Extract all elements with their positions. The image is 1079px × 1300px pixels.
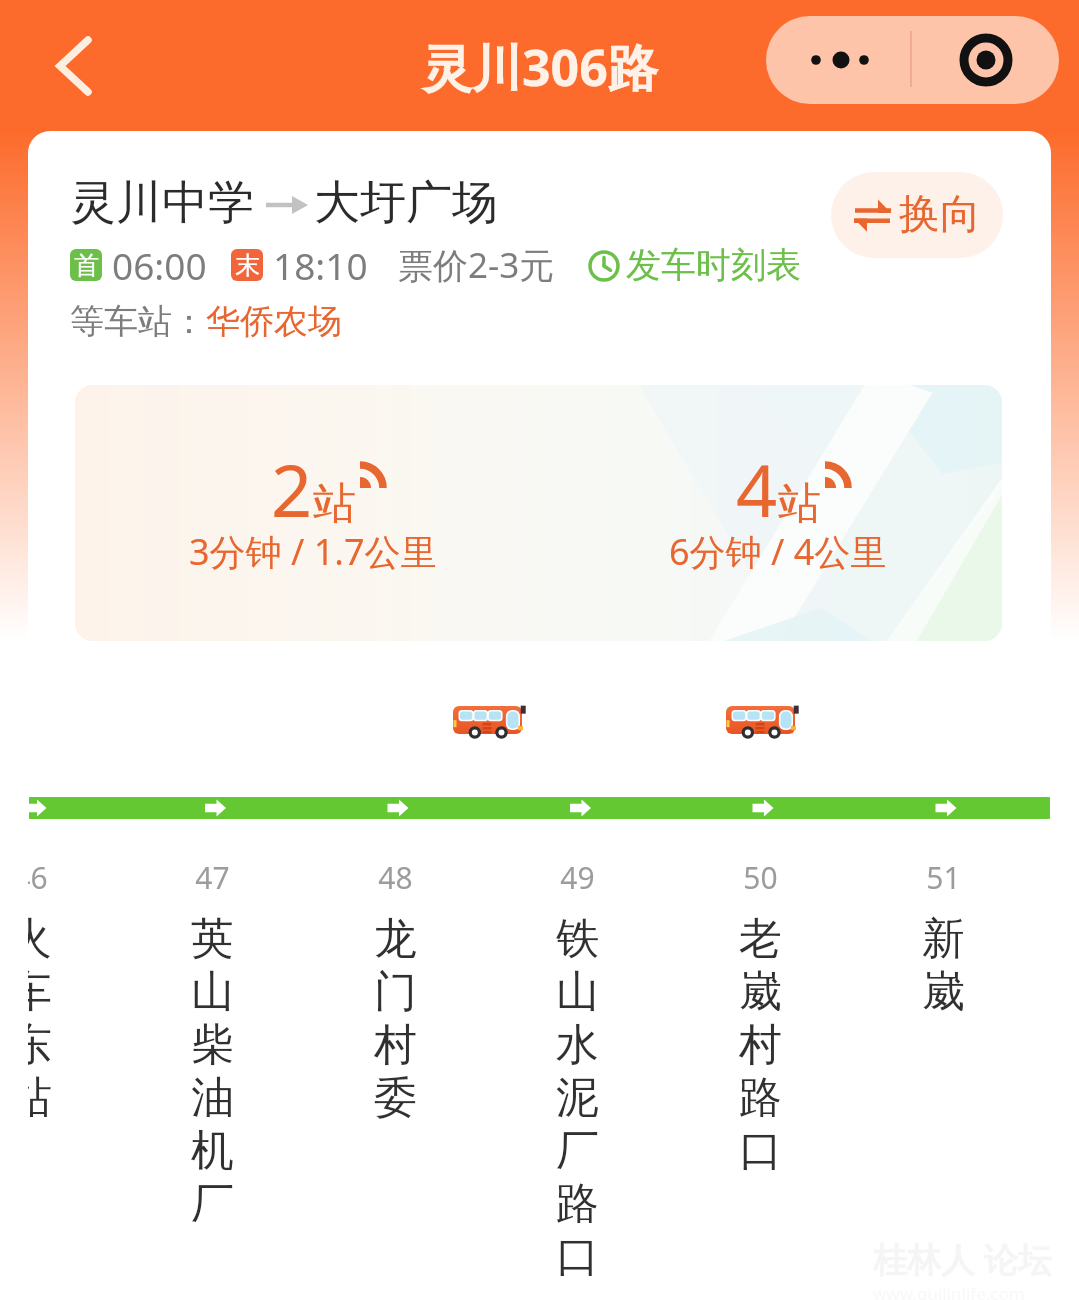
staticText: 村 [739,1018,782,1071]
staticText: 老 [739,912,782,965]
staticText: 路 [556,1177,599,1230]
staticText: 06:00 [112,240,207,290]
button[interactable]: Back [38,30,110,102]
staticText: 水 [556,1018,599,1071]
staticText: 站 [778,477,821,531]
button[interactable]: 发车时刻表 [587,243,801,287]
staticText: 46 [28,857,48,898]
staticText: 站 [313,477,356,531]
staticText: 柴 [191,1018,234,1071]
staticText: 厂 [556,1124,599,1177]
staticText: 门 [374,965,417,1018]
button[interactable]: Close mini program [912,16,1059,104]
staticText: 3分钟 / 1.7公里 [189,527,437,576]
staticText: 英 [191,912,234,965]
staticText: 泥 [556,1071,599,1124]
button[interactable]: 47 [121,857,303,1230]
staticText: 东 [28,1018,52,1071]
staticText: 站 [28,1071,52,1124]
staticText: 委 [374,1071,417,1124]
staticText: 车 [28,965,52,1018]
staticText: 桂林人 论坛 [873,1236,1052,1282]
button[interactable]: 50 [669,857,851,1177]
staticText: 路 [739,1071,782,1124]
staticText: 山 [191,965,234,1018]
staticText: 铁 [556,912,599,965]
staticText: 火 [28,912,52,965]
button[interactable]: 换向 [831,172,1003,258]
staticText: 厂 [191,1177,234,1230]
button[interactable]: 4 [578,385,978,641]
staticText: 崴 [922,965,965,1018]
staticText: 崴 [739,965,782,1018]
staticText: 大圩广场 [314,174,498,232]
button[interactable]: 49 [486,857,668,1283]
staticText: 华侨农场 [206,300,342,343]
button[interactable]: 46 [28,857,121,1124]
staticText: 灵川中学 [70,174,254,232]
button[interactable]: More options [766,16,910,104]
staticText: 票价2-3元 [398,241,555,289]
staticText: 龙 [374,912,417,965]
staticText: 机 [191,1124,234,1177]
staticText: 新 [922,912,965,965]
staticText: 50 [743,857,778,898]
staticText: 首 [74,250,99,281]
staticText: 4 [736,440,778,538]
staticText: 49 [560,857,595,898]
staticText: 山 [556,965,599,1018]
staticText: 48 [378,857,413,898]
staticText: 末 [235,250,260,281]
staticText: 换向 [899,189,981,241]
button[interactable]: 51 [852,857,1034,1018]
staticText: 油 [191,1071,234,1124]
staticText: 口 [556,1230,599,1283]
staticText: 等车站： [70,300,206,343]
button[interactable]: 2 [113,385,513,641]
staticText: 发车时刻表 [626,243,801,287]
staticText: 51 [926,857,961,898]
staticText: 2 [271,440,313,538]
button[interactable]: 48 [304,857,486,1124]
staticText: 6分钟 / 4公里 [669,527,887,576]
staticText: 村 [374,1018,417,1071]
staticText: 口 [739,1124,782,1177]
staticText: 47 [195,857,230,898]
staticText: 18:10 [273,240,368,290]
staticText: 灵川306路 [422,33,658,101]
